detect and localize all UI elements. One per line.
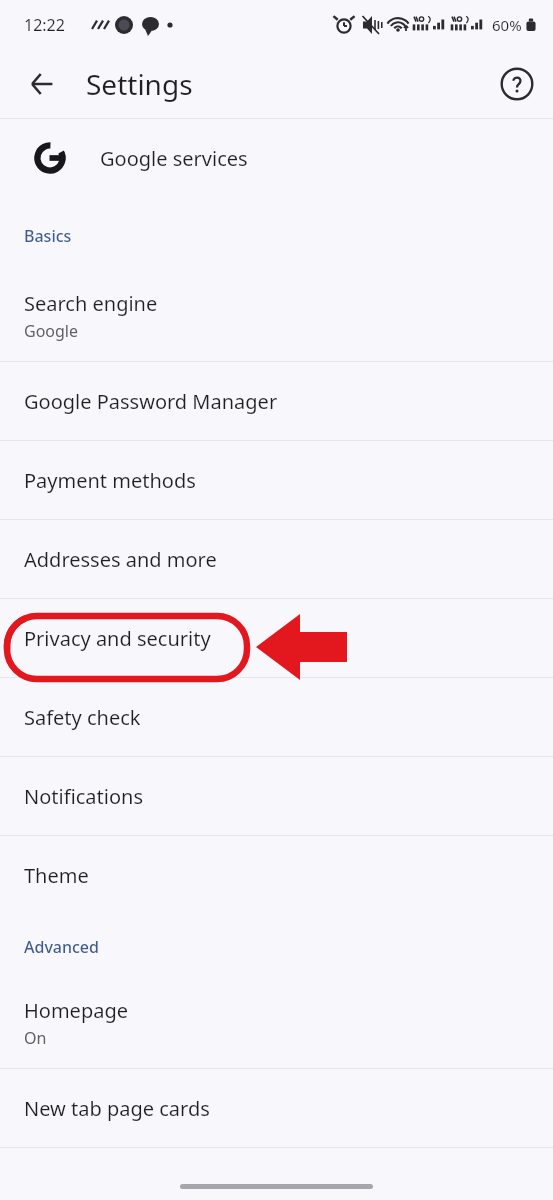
staticText: Notifications — [24, 783, 143, 810]
button[interactable]: Search engine — [0, 271, 553, 361]
button[interactable]: Google Password Manager — [0, 362, 553, 440]
button[interactable]: Addresses and more — [0, 520, 553, 598]
staticText: Safety check — [24, 704, 141, 731]
staticText: Theme — [24, 862, 89, 889]
staticText: Settings — [86, 65, 193, 103]
button[interactable]: Google services — [0, 119, 553, 197]
staticText: New tab page cards — [24, 1095, 210, 1122]
button[interactable]: Payment methods — [0, 441, 553, 519]
staticText: Addresses and more — [24, 546, 217, 573]
staticText: Google — [24, 320, 79, 342]
staticText: 60% — [492, 15, 522, 35]
staticText: Payment methods — [24, 467, 196, 494]
staticText: On — [24, 1027, 47, 1049]
staticText: Advanced — [24, 936, 99, 958]
button[interactable]: Back — [18, 60, 66, 108]
button[interactable]: Notifications — [0, 757, 553, 835]
staticText: Google Password Manager — [24, 388, 278, 415]
staticText: Privacy and security — [24, 625, 211, 652]
staticText: 12:22 — [24, 14, 65, 36]
button[interactable]: Safety check — [0, 678, 553, 756]
staticText: Search engine — [24, 290, 158, 317]
staticText: Basics — [24, 225, 72, 247]
button[interactable]: Privacy and security — [0, 599, 553, 677]
button[interactable]: New tab page cards — [0, 1069, 553, 1147]
button[interactable]: Theme — [0, 836, 553, 914]
staticText: Homepage — [24, 997, 128, 1024]
button[interactable]: Help — [493, 60, 541, 108]
staticText: Google services — [100, 145, 248, 172]
button[interactable]: Homepage — [0, 978, 553, 1068]
